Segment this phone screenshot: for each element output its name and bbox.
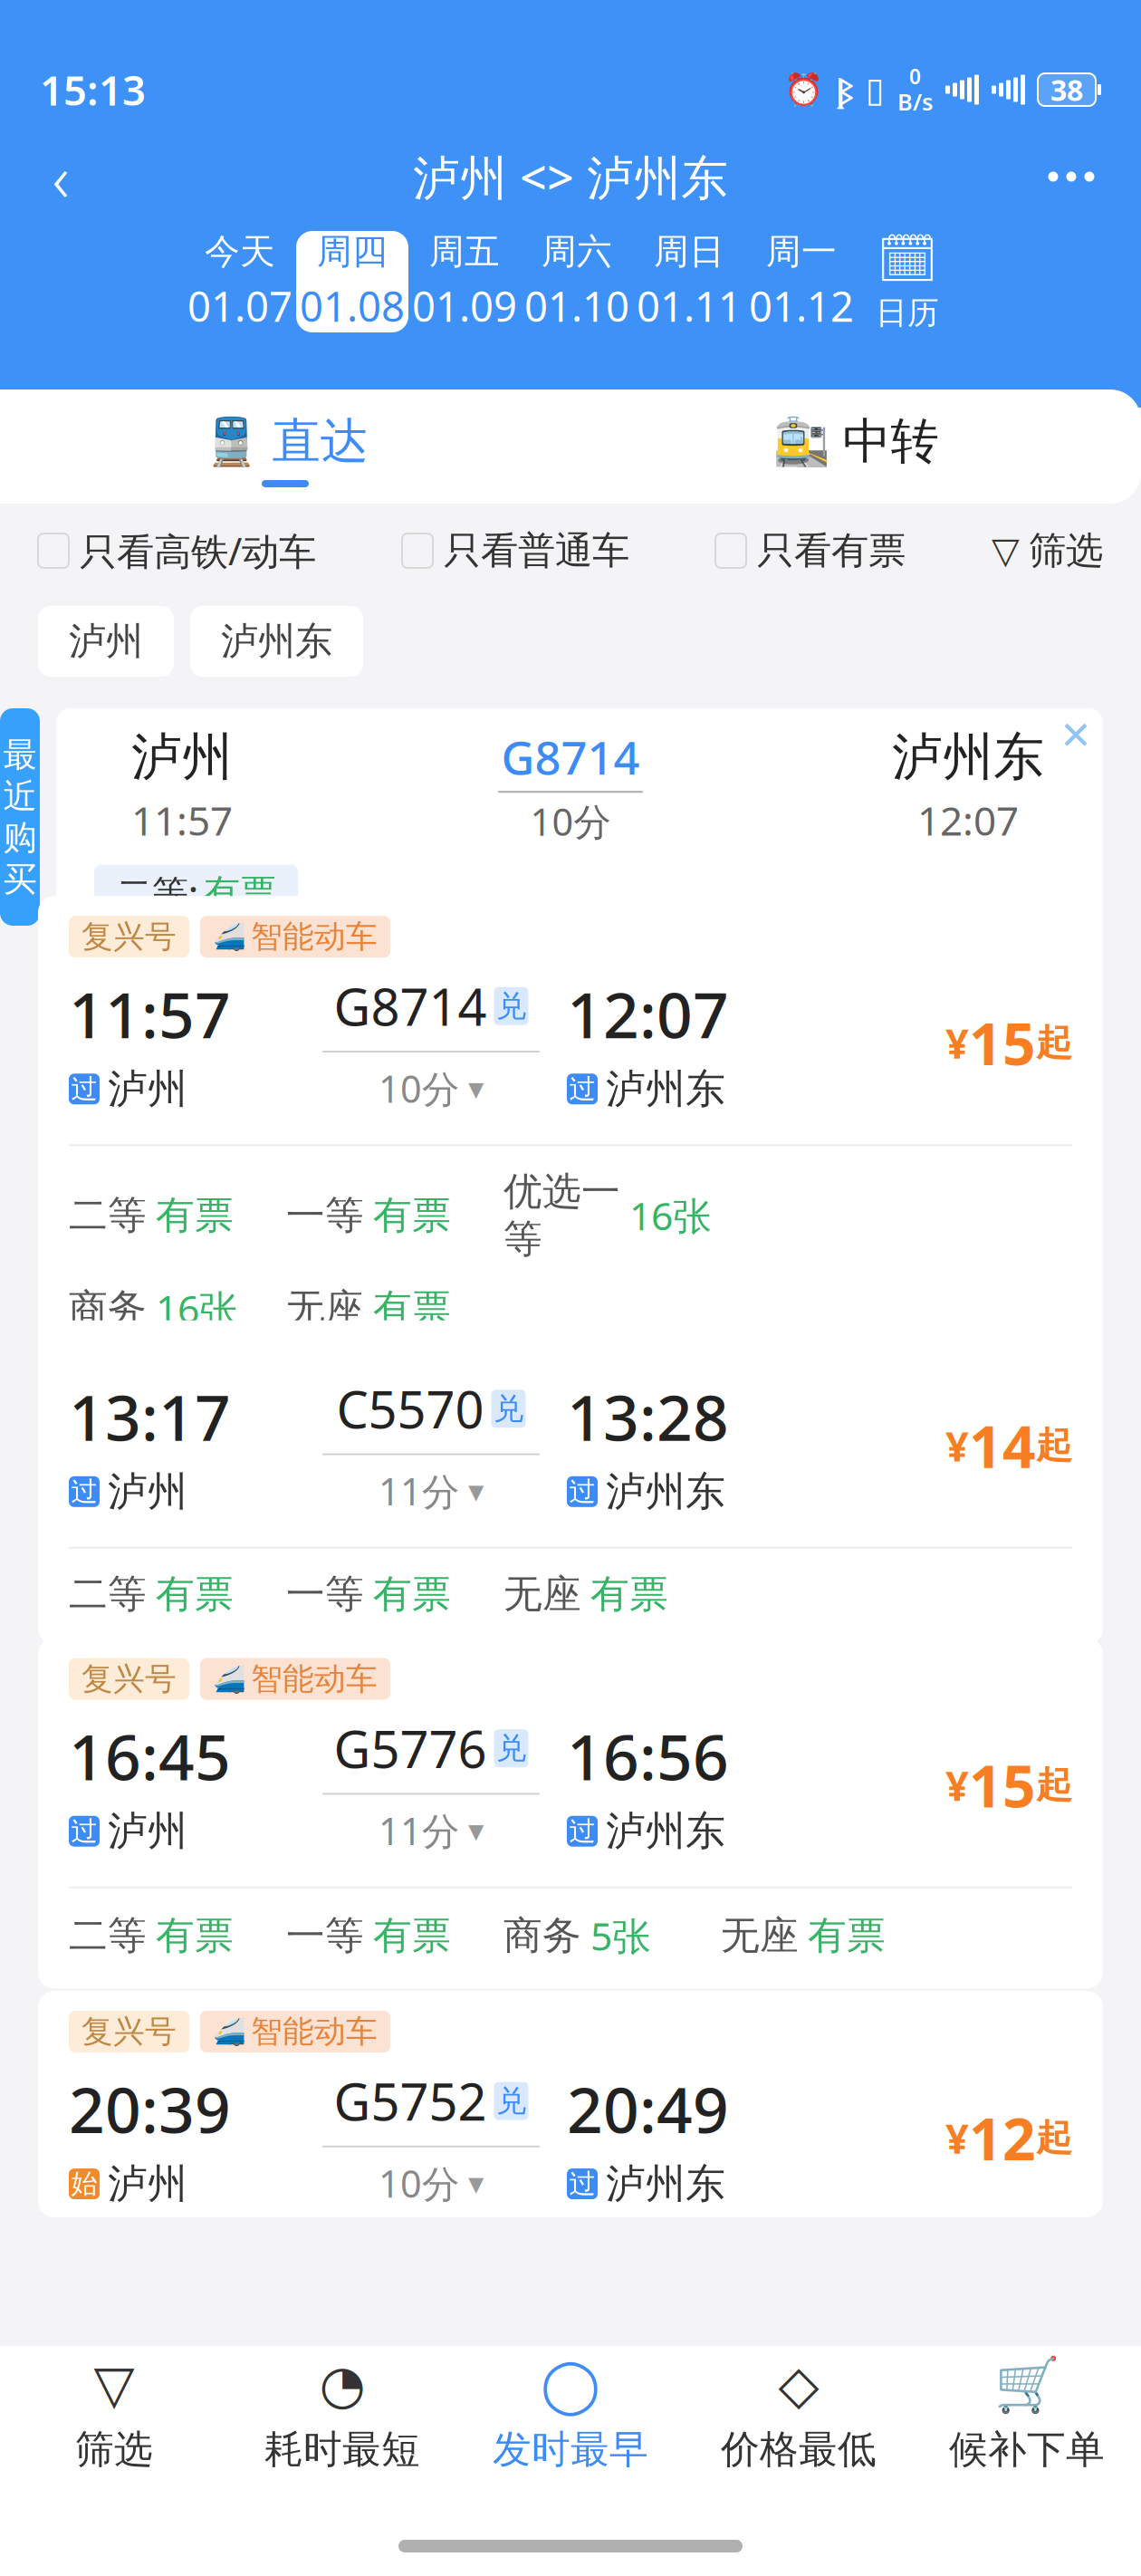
- staticText: G5776: [334, 1715, 487, 1782]
- staticText: 有票: [590, 1571, 668, 1618]
- staticText: 智能动车: [251, 1660, 378, 1698]
- staticText: 有票: [373, 1912, 451, 1959]
- staticText: 兑: [496, 1730, 526, 1767]
- button[interactable]: 泸州: [38, 606, 174, 677]
- staticText: 01.11: [637, 279, 742, 333]
- staticText: 泸州 <> 泸州东: [413, 145, 728, 208]
- staticText: 只看有票: [757, 528, 906, 574]
- staticText: 泸州: [131, 726, 233, 788]
- staticText: 15:13: [40, 62, 146, 117]
- staticText: 20:49: [567, 2067, 729, 2150]
- button[interactable]: 只看高铁/动车: [38, 526, 316, 576]
- staticText: G8714: [334, 972, 487, 1040]
- staticText: 01.12: [749, 279, 854, 333]
- button[interactable]: ◔: [228, 2346, 456, 2482]
- staticText: 周四: [317, 230, 388, 273]
- staticText: G5752: [334, 2067, 487, 2135]
- staticText: 16张: [156, 1283, 238, 1334]
- staticText: ▾: [468, 1070, 484, 1106]
- staticText: 过: [569, 1815, 595, 1847]
- button[interactable]: 🚆: [0, 389, 570, 504]
- button[interactable]: ▽: [992, 528, 1103, 574]
- staticText: 一等: [286, 1192, 364, 1239]
- staticText: 无座: [286, 1285, 364, 1332]
- staticText: 16张: [629, 1190, 712, 1241]
- staticText: ✕: [1059, 714, 1092, 757]
- staticText: 日历: [876, 294, 939, 332]
- staticText: 二等: [69, 1192, 147, 1239]
- button[interactable]: 周六: [521, 231, 633, 332]
- button[interactable]: 🚉: [570, 389, 1141, 504]
- button[interactable]: 周五: [408, 231, 521, 332]
- staticText: 过: [71, 1475, 97, 1508]
- staticText: G8714: [501, 726, 640, 787]
- staticText: 11分: [379, 1466, 459, 1516]
- staticText: 有票: [156, 1192, 234, 1239]
- staticText: 🗓: [877, 231, 938, 286]
- button[interactable]: 🛒: [913, 2346, 1141, 2482]
- staticText: 11:57: [69, 972, 231, 1055]
- staticText: 11:57: [131, 794, 233, 847]
- button[interactable]: More: [1021, 137, 1121, 216]
- button[interactable]: 复兴号: [38, 1991, 1103, 2217]
- staticText: 复兴号: [81, 2012, 177, 2051]
- staticText: 智能动车: [251, 2012, 378, 2051]
- staticText: C5570: [336, 1375, 484, 1443]
- button[interactable]: ▽: [0, 2346, 228, 2482]
- staticText: 16:56: [567, 1714, 729, 1798]
- button[interactable]: ◇: [685, 2346, 913, 2482]
- button[interactable]: 🗓: [858, 231, 957, 332]
- staticText: 有票: [373, 1571, 451, 1618]
- staticText: 筛选: [75, 2426, 153, 2473]
- staticText: 🚆: [202, 415, 259, 468]
- staticText: 有票: [373, 1285, 451, 1332]
- staticText: 12: [969, 2099, 1036, 2176]
- button[interactable]: 周一: [745, 231, 858, 332]
- staticText: 16:45: [69, 1714, 231, 1798]
- staticText: 泸州东: [606, 1807, 725, 1856]
- button[interactable]: 泸州东: [190, 606, 363, 677]
- staticText: 有票: [156, 1912, 234, 1959]
- staticText: 周一: [766, 230, 837, 273]
- staticText: 二等:: [116, 869, 198, 917]
- staticText: 10分: [530, 796, 611, 846]
- staticText: B/s: [897, 86, 933, 117]
- staticText: 10分: [379, 2158, 459, 2208]
- staticText: 周六: [542, 230, 612, 273]
- button[interactable]: 13:17: [38, 1320, 1103, 1645]
- staticText: ▽: [94, 2355, 134, 2415]
- staticText: 20:39: [69, 2067, 231, 2150]
- staticText: 起: [1036, 1763, 1072, 1807]
- staticText: 🚄: [213, 922, 246, 952]
- staticText: 始: [71, 2168, 97, 2200]
- button[interactable]: 只看普通车: [402, 528, 629, 574]
- staticText: 泸州: [108, 2159, 187, 2208]
- staticText: 过: [569, 1475, 595, 1508]
- staticText: 只看普通车: [444, 528, 629, 574]
- staticText: 价格最低: [721, 2426, 877, 2473]
- button[interactable]: 复兴号: [38, 896, 1103, 1361]
- button[interactable]: 周日: [633, 231, 745, 332]
- staticText: 商务: [69, 1285, 147, 1332]
- staticText: ᛒ: [836, 68, 853, 111]
- staticText: 15: [969, 1004, 1036, 1081]
- button[interactable]: 周四: [296, 231, 408, 332]
- staticText: 起: [1036, 1423, 1072, 1468]
- button[interactable]: ◯: [456, 2346, 685, 2482]
- staticText: 泸州东: [606, 2159, 725, 2208]
- button[interactable]: 只看有票: [715, 528, 906, 574]
- button[interactable]: Back: [20, 137, 101, 216]
- button[interactable]: 今天: [184, 231, 296, 332]
- staticText: ⏰: [784, 72, 823, 108]
- staticText: 13:17: [69, 1375, 231, 1458]
- staticText: 12:07: [567, 972, 729, 1055]
- staticText: 无座: [721, 1912, 799, 1959]
- staticText: 12:07: [917, 794, 1019, 847]
- button[interactable]: Close: [1049, 708, 1103, 763]
- staticText: ▯: [866, 70, 885, 109]
- button[interactable]: 复兴号: [38, 1638, 1103, 1989]
- staticText: 有票: [808, 1912, 886, 1959]
- staticText: 过: [71, 1073, 97, 1105]
- staticText: 中转: [843, 412, 939, 471]
- staticText: 38: [1050, 70, 1083, 109]
